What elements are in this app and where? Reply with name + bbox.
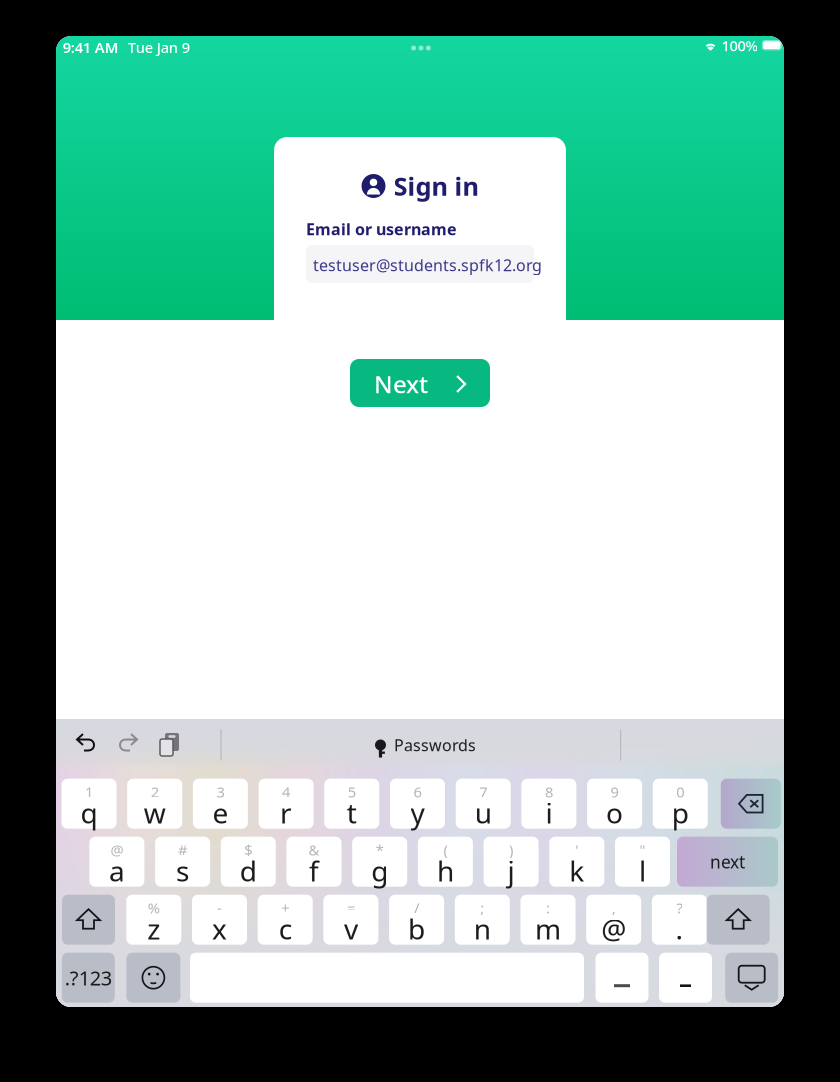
button[interactable]: [659, 953, 712, 1003]
button[interactable]: Undo: [74, 730, 100, 754]
button[interactable]: +: [258, 895, 313, 945]
staticText: +: [281, 898, 289, 917]
button[interactable]: .?123: [62, 953, 115, 1003]
staticText: %: [148, 898, 160, 917]
button[interactable]: 9: [587, 779, 642, 829]
button[interactable]: Next: [350, 359, 490, 407]
staticText: g: [371, 852, 388, 889]
staticText: Tue Jan 9: [128, 37, 190, 57]
button[interactable]: -: [192, 895, 247, 945]
staticText: ": [639, 840, 645, 859]
staticText: x: [212, 910, 227, 947]
staticText: r: [280, 794, 292, 831]
staticText: 8: [545, 782, 553, 801]
staticText: testuser@students.spfk12.org: [313, 254, 542, 276]
button[interactable]: next: [677, 837, 778, 887]
staticText: v: [344, 910, 358, 947]
staticText: z: [147, 910, 160, 947]
staticText: i: [545, 794, 552, 831]
staticText: ;: [480, 898, 484, 917]
button[interactable]: (: [418, 837, 473, 887]
button[interactable]: 7: [456, 779, 511, 829]
staticText: m: [535, 910, 561, 947]
button[interactable]: &: [286, 837, 341, 887]
button[interactable]: /: [389, 895, 444, 945]
staticText: 1: [85, 782, 93, 801]
button[interactable]: ': [549, 837, 604, 887]
button[interactable]: 6: [390, 779, 445, 829]
staticText: $: [244, 840, 252, 859]
staticText: *: [376, 840, 384, 859]
button[interactable]: [725, 953, 778, 1003]
button[interactable]: Delete: [721, 779, 781, 829]
button[interactable]: ): [484, 837, 539, 887]
staticText: f: [309, 852, 319, 889]
button[interactable]: 0: [653, 779, 708, 829]
button[interactable]: 1: [61, 779, 116, 829]
button[interactable]: #: [155, 837, 210, 887]
staticText: next: [710, 850, 745, 873]
staticText: ': [575, 840, 578, 859]
button[interactable]: Redo: [114, 730, 140, 754]
staticText: y: [410, 794, 424, 831]
button[interactable]: @: [89, 837, 144, 887]
button[interactable]: *: [352, 837, 407, 887]
button[interactable]: Passwords: [374, 733, 476, 757]
staticText: 9:41 AM: [63, 37, 119, 57]
button[interactable]: :: [520, 895, 575, 945]
staticText: (: [443, 840, 447, 859]
staticText: l: [639, 852, 646, 889]
staticText: b: [408, 910, 425, 947]
staticText: k: [569, 852, 584, 889]
staticText: 3: [216, 782, 224, 801]
staticText: u: [475, 794, 492, 831]
staticText: w: [144, 794, 166, 831]
button[interactable]: ?: [652, 895, 707, 945]
staticText: Sign in: [393, 169, 478, 203]
button[interactable]: $: [221, 837, 276, 887]
staticText: 5: [348, 782, 356, 801]
staticText: j: [508, 852, 515, 889]
staticText: n: [474, 910, 491, 947]
button[interactable]: =: [323, 895, 378, 945]
staticText: =: [347, 898, 355, 917]
button[interactable]: ,: [586, 895, 641, 945]
staticText: q: [80, 794, 97, 831]
staticText: 100%: [721, 36, 757, 55]
staticText: s: [176, 852, 189, 889]
staticText: @: [601, 910, 626, 947]
staticText: c: [279, 910, 292, 947]
staticText: 6: [413, 782, 421, 801]
button[interactable]: 2: [127, 779, 182, 829]
staticText: :: [546, 898, 550, 917]
staticText: 0: [676, 782, 684, 801]
staticText: 4: [282, 782, 290, 801]
staticText: t: [347, 794, 357, 831]
button[interactable]: 5: [324, 779, 379, 829]
staticText: ): [509, 840, 513, 859]
button[interactable]: [707, 895, 770, 945]
button[interactable]: [595, 953, 648, 1003]
staticText: 9: [611, 782, 619, 801]
button[interactable]: [126, 953, 180, 1003]
button[interactable]: ;: [455, 895, 510, 945]
staticText: /: [414, 898, 419, 917]
staticText: e: [212, 794, 228, 831]
staticText: .?123: [65, 964, 112, 991]
button[interactable]: 4: [259, 779, 314, 829]
staticText: Next: [374, 368, 428, 400]
button[interactable]: 3: [193, 779, 248, 829]
button[interactable]: 8: [521, 779, 576, 829]
staticText: h: [437, 852, 454, 889]
button[interactable]: %: [126, 895, 181, 945]
staticText: Email or username: [306, 218, 457, 240]
button[interactable]: Paste: [156, 730, 178, 754]
staticText: &: [308, 840, 319, 859]
staticText: o: [606, 794, 623, 831]
button[interactable]: [62, 895, 115, 945]
button[interactable]: ": [615, 837, 670, 887]
staticText: @: [110, 840, 123, 859]
staticText: -: [217, 898, 222, 917]
staticText: 7: [479, 782, 487, 801]
